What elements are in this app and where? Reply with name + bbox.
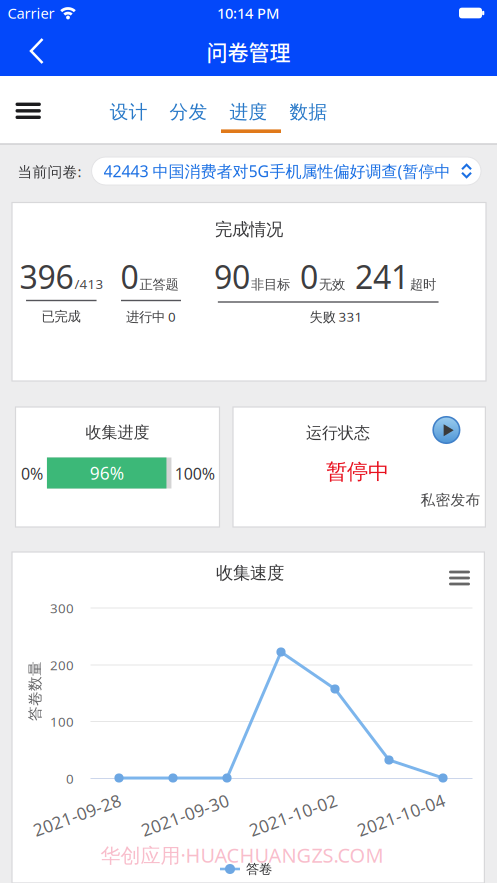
staticText: 0: [66, 770, 74, 787]
button[interactable]: Chart menu: [449, 571, 470, 585]
staticText: 答卷数量: [5, 682, 65, 700]
staticText: 私密发布: [420, 491, 480, 509]
staticText: 答卷: [246, 861, 272, 877]
staticText: 进度: [229, 100, 267, 123]
button[interactable]: Menu: [15, 103, 41, 119]
staticText: 华创应用·HUACHUANGZS.COM: [100, 842, 383, 868]
staticText: 完成情况: [215, 219, 283, 240]
button[interactable]: Back: [29, 37, 45, 65]
staticText: 收集速度: [216, 562, 284, 584]
staticText: 42443 中国消费者对5G手机属性偏好调查(暂停中: [104, 160, 451, 182]
staticText: 设计: [110, 100, 148, 123]
staticText: 300: [50, 599, 74, 617]
staticText: 2021-09-30: [139, 803, 231, 826]
staticText: 396: [20, 255, 74, 298]
staticText: 分发: [169, 100, 207, 123]
staticText: /413: [75, 275, 104, 293]
button[interactable]: 42443 中国消费者对5G手机属性偏好调查(暂停中: [92, 157, 481, 185]
staticText: 2021-10-02: [247, 803, 339, 826]
staticText: 超时: [410, 276, 436, 293]
staticText: 200: [50, 656, 74, 674]
staticText: 正答题: [140, 276, 179, 293]
button[interactable]: 数据: [289, 100, 327, 123]
staticText: 2021-10-04: [355, 803, 447, 826]
staticText: 失败 331: [309, 308, 362, 325]
staticText: 已完成: [41, 308, 80, 325]
staticText: 0: [300, 255, 318, 298]
staticText: 241: [355, 255, 409, 298]
staticText: 非目标: [251, 276, 290, 293]
staticText: 10:14 PM: [217, 3, 279, 23]
staticText: 2021-09-28: [31, 803, 123, 826]
staticText: 100%: [175, 463, 215, 484]
staticText: 收集进度: [85, 423, 149, 442]
staticText: Carrier: [7, 3, 54, 23]
button[interactable]: 分发: [169, 100, 207, 123]
staticText: 100: [50, 713, 74, 730]
staticText: 数据: [289, 100, 327, 123]
button[interactable]: 答卷: [220, 861, 272, 877]
staticText: 暂停中: [326, 458, 389, 485]
staticText: 问卷管理: [206, 36, 290, 66]
staticText: 90: [214, 255, 250, 298]
staticText: 无效: [319, 276, 345, 293]
button[interactable]: 设计: [110, 100, 148, 123]
staticText: 96%: [90, 461, 124, 484]
staticText: 0%: [21, 463, 43, 484]
staticText: 0: [121, 255, 139, 298]
staticText: 当前问卷:: [17, 162, 81, 181]
staticText: 进行中 0: [126, 308, 176, 325]
button[interactable]: 进度: [229, 100, 267, 123]
button[interactable]: Resume: [433, 417, 460, 443]
staticText: 运行状态: [306, 423, 370, 443]
